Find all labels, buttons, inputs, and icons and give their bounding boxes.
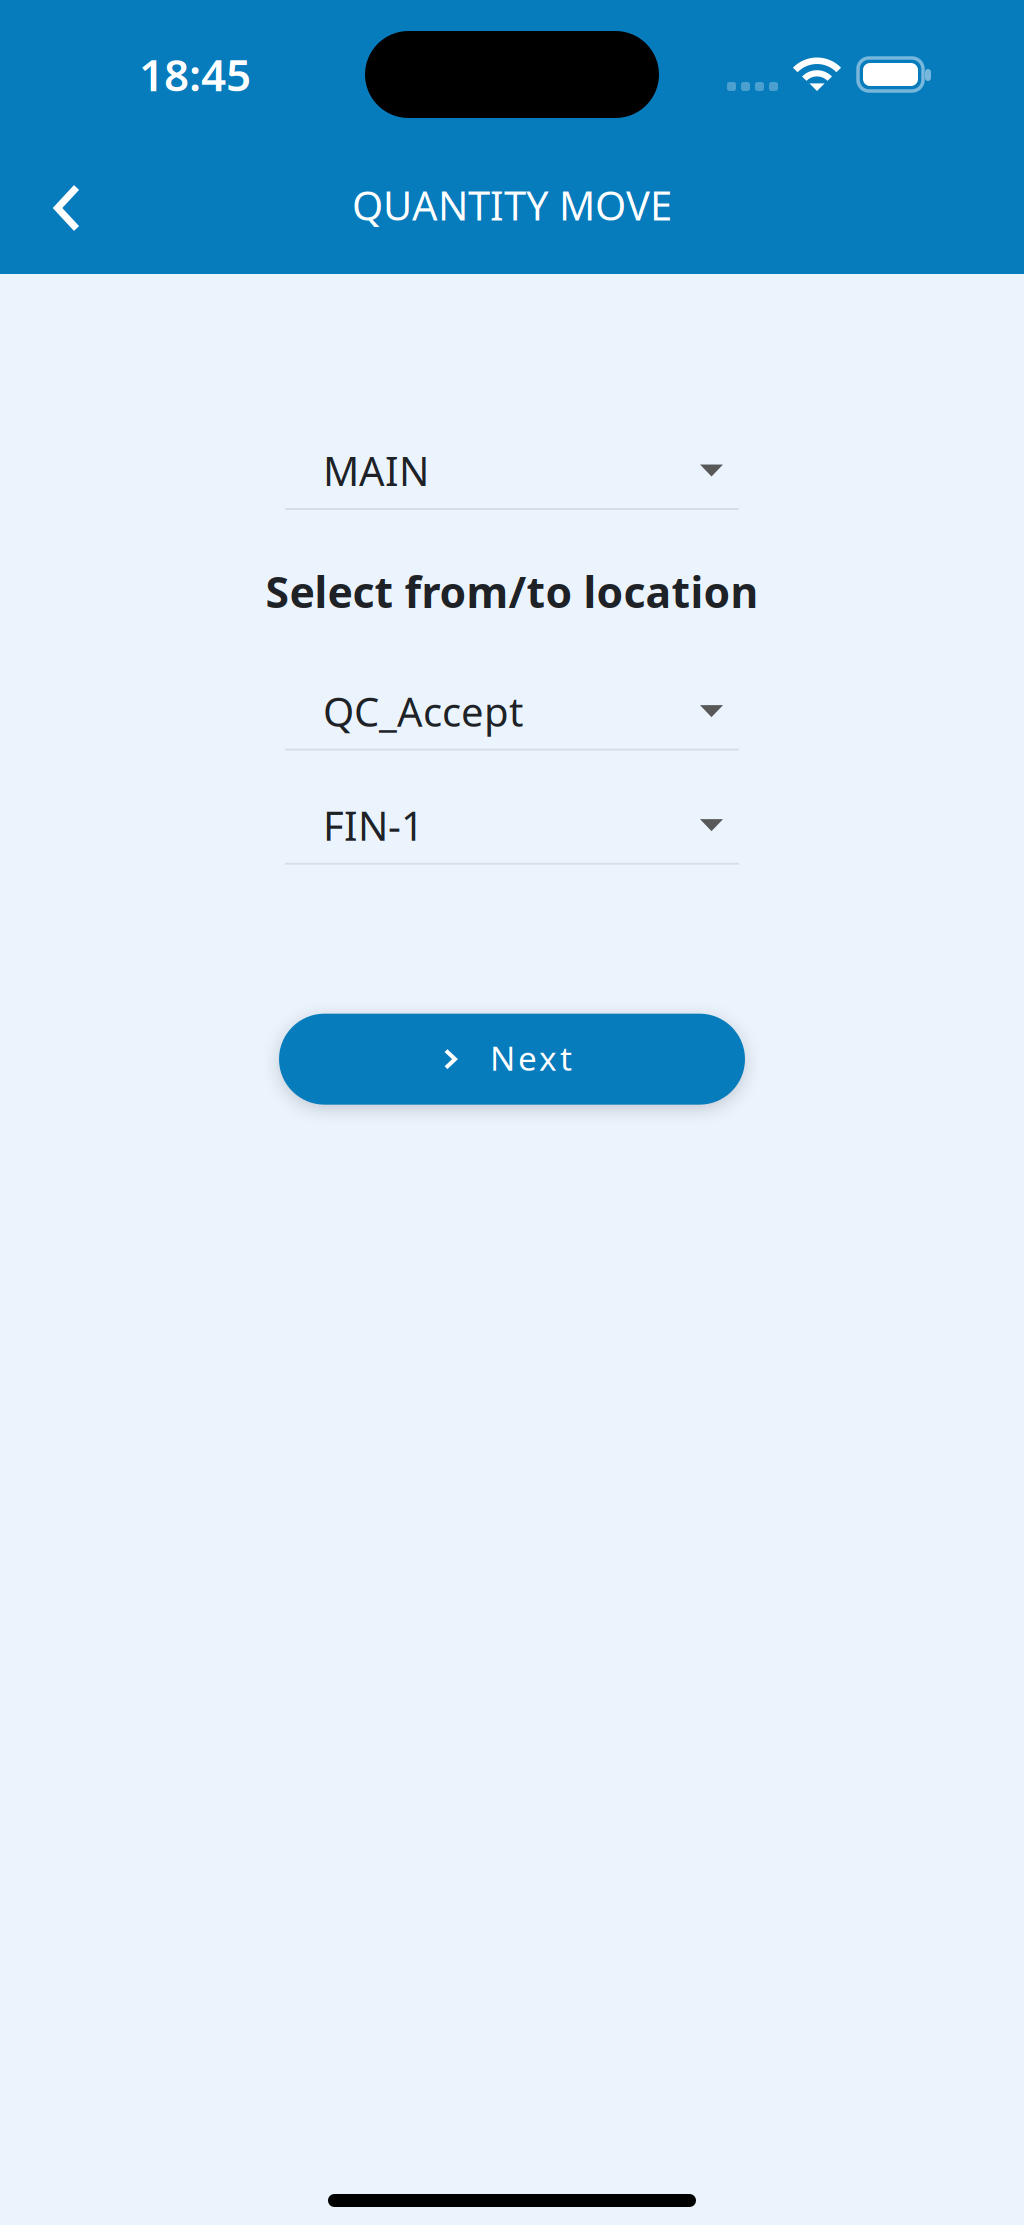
staticText: Next: [490, 1036, 572, 1080]
staticText: 18:45: [139, 45, 251, 103]
staticText: MAIN: [323, 444, 429, 497]
staticText: QUANTITY MOVE: [352, 178, 672, 231]
button[interactable]: FIN-1: [285, 799, 739, 865]
button[interactable]: Next: [279, 1014, 745, 1105]
staticText: Select from/to location: [265, 563, 758, 620]
button[interactable]: MAIN: [285, 444, 739, 510]
staticText: FIN-1: [323, 799, 424, 852]
button[interactable]: Back: [0, 152, 114, 258]
button[interactable]: QC_Accept: [285, 685, 739, 751]
staticText: QC_Accept: [323, 685, 523, 738]
